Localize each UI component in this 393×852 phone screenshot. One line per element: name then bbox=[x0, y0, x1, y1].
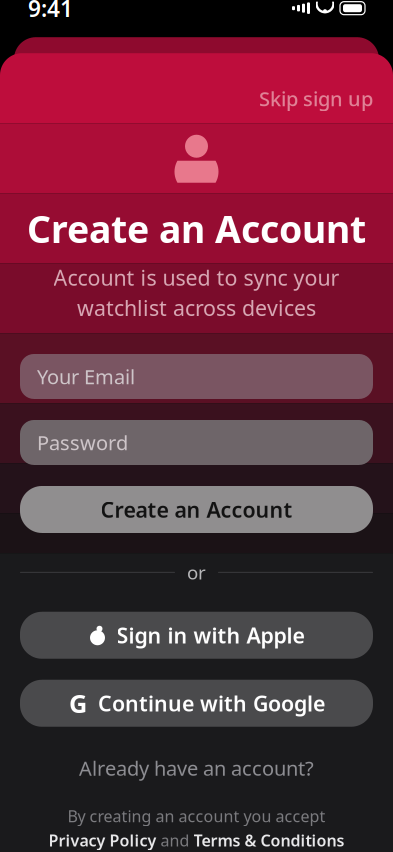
button[interactable]: Your Email bbox=[20, 354, 373, 399]
button[interactable]: Password bbox=[20, 420, 373, 465]
staticText: Privacy Policy bbox=[48, 830, 156, 851]
staticText: Continue with Google bbox=[98, 689, 325, 717]
button[interactable]: Already have an account? bbox=[71, 749, 322, 787]
button[interactable]: Create an Account bbox=[20, 486, 373, 533]
staticText: G bbox=[69, 686, 87, 720]
staticText: Create an Account bbox=[27, 204, 366, 253]
button[interactable]: Privacy Policy bbox=[48, 830, 156, 851]
staticText: watchlist across devices bbox=[77, 294, 316, 322]
staticText: By creating an account you accept bbox=[67, 805, 325, 826]
button[interactable]: Terms & Conditions bbox=[193, 830, 344, 851]
button[interactable]: Sign in with Apple bbox=[20, 612, 373, 659]
staticText: Already have an account? bbox=[79, 755, 314, 781]
staticText: Account is used to sync your bbox=[53, 263, 339, 292]
staticText: Create an Account bbox=[100, 495, 292, 524]
staticText: Sign in with Apple bbox=[116, 621, 304, 649]
staticText: Skip sign up bbox=[259, 85, 373, 112]
button[interactable]: G bbox=[20, 680, 373, 727]
staticText: or bbox=[187, 560, 206, 585]
staticText: Your Email bbox=[37, 363, 135, 390]
staticText: and bbox=[160, 830, 189, 851]
staticText: Password bbox=[37, 429, 128, 456]
button[interactable]: Skip sign up bbox=[255, 79, 377, 118]
staticText: Terms & Conditions bbox=[193, 830, 344, 851]
staticText: 9:41 bbox=[28, 0, 73, 23]
